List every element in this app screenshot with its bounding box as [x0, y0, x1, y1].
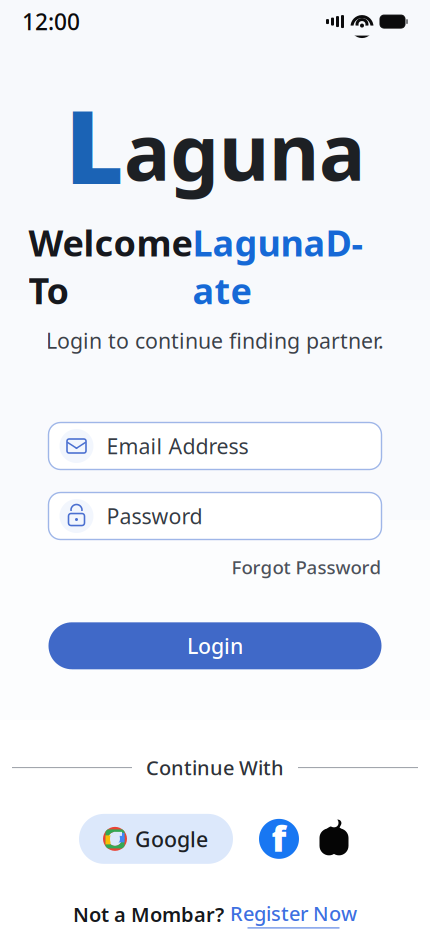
button[interactable]: Register Now — [230, 900, 357, 928]
staticText: Forgot Password — [231, 554, 381, 579]
staticText: aguna — [124, 99, 365, 202]
staticText: 12:00 — [22, 6, 80, 37]
staticText: Continue With — [146, 754, 284, 781]
button[interactable]: Continue with Apple — [317, 819, 351, 859]
button[interactable]: Login — [48, 622, 381, 669]
staticText: Login — [187, 632, 243, 660]
staticText: L — [65, 77, 124, 212]
staticText: Welcome To — [28, 219, 192, 314]
staticText: Login to continue finding partner. — [46, 326, 384, 354]
button[interactable]: Password — [48, 492, 381, 539]
staticText: Password — [106, 502, 202, 530]
staticText: Email Address — [106, 432, 248, 460]
button[interactable]: Continue with Facebook — [259, 819, 299, 859]
staticText: f — [271, 814, 286, 862]
staticText: Not a Mombar? — [73, 901, 224, 927]
staticText: LagunaDate — [192, 219, 363, 314]
staticText: Register Now — [230, 900, 357, 926]
staticText: Google — [135, 825, 208, 853]
button[interactable]: Email Address — [48, 422, 381, 469]
button[interactable]: Forgot Password — [231, 554, 381, 579]
button[interactable]: Google — [79, 814, 233, 864]
